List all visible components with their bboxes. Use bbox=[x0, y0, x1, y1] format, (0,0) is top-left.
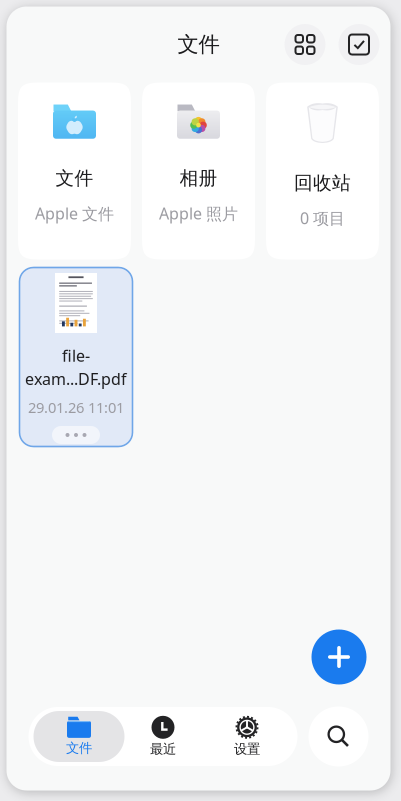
staticText: file- bbox=[62, 345, 90, 366]
button[interactable]: 文件 bbox=[37, 710, 121, 763]
staticText: 文件 bbox=[55, 167, 93, 190]
staticText: Apple 照片 bbox=[159, 203, 238, 224]
button[interactable]: 最近 bbox=[121, 710, 205, 763]
staticText: 回收站 bbox=[294, 171, 351, 194]
button[interactable]: 回收站 bbox=[266, 82, 379, 259]
staticText: 文件 bbox=[66, 740, 92, 756]
button[interactable]: 相册 bbox=[142, 82, 255, 259]
button[interactable]: file- bbox=[19, 267, 132, 446]
button[interactable]: 新建 bbox=[311, 629, 366, 684]
button[interactable]: 选择 bbox=[338, 24, 379, 65]
staticText: Apple 文件 bbox=[35, 203, 114, 224]
button[interactable]: 设置 bbox=[205, 710, 289, 763]
staticText: 29.01.26 11:01 bbox=[28, 397, 124, 417]
button[interactable]: 文件 bbox=[18, 82, 131, 259]
button[interactable]: 网格视图 bbox=[284, 24, 325, 65]
staticText: 文件 bbox=[177, 31, 219, 58]
staticText: 设置 bbox=[234, 741, 260, 757]
staticText: 最近 bbox=[150, 741, 176, 757]
staticText: exam...DF.pdf bbox=[25, 368, 127, 389]
staticText: 相册 bbox=[179, 167, 217, 190]
staticText: 0 项目 bbox=[300, 207, 345, 229]
button[interactable]: 搜索 bbox=[308, 706, 368, 766]
